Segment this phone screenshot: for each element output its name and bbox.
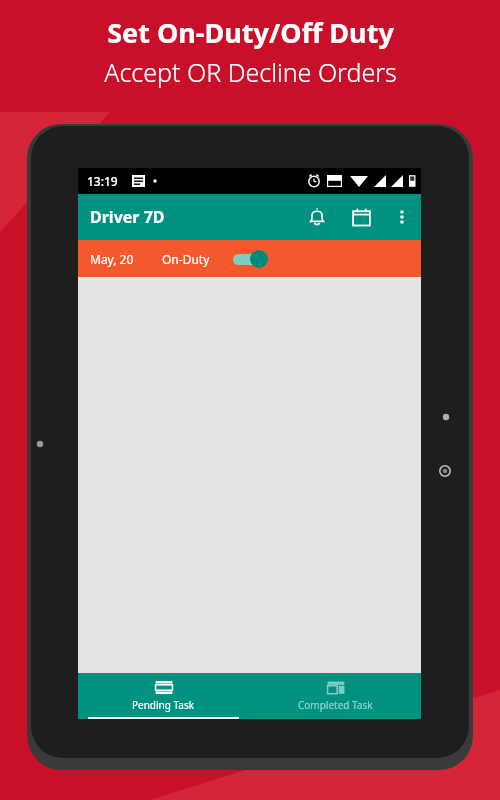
staticText: On-Duty — [162, 251, 210, 267]
staticText: Pending Task — [132, 698, 195, 712]
button[interactable]: Pending Task — [78, 673, 249, 719]
staticText: Accept OR Decline Orders — [104, 55, 397, 89]
staticText: May, 20 — [90, 251, 134, 267]
button[interactable]: Completed Task — [249, 673, 421, 719]
staticText: 13:19 — [87, 173, 118, 189]
button[interactable]: On duty toggle — [230, 246, 274, 272]
staticText: Set On-Duty/Off Duty — [107, 14, 394, 51]
button[interactable]: Calendar — [339, 195, 383, 239]
button[interactable]: More options — [383, 198, 421, 236]
button[interactable]: Notifications — [295, 195, 339, 239]
staticText: Completed Task — [298, 698, 373, 712]
staticText: Driver 7D — [90, 206, 165, 228]
